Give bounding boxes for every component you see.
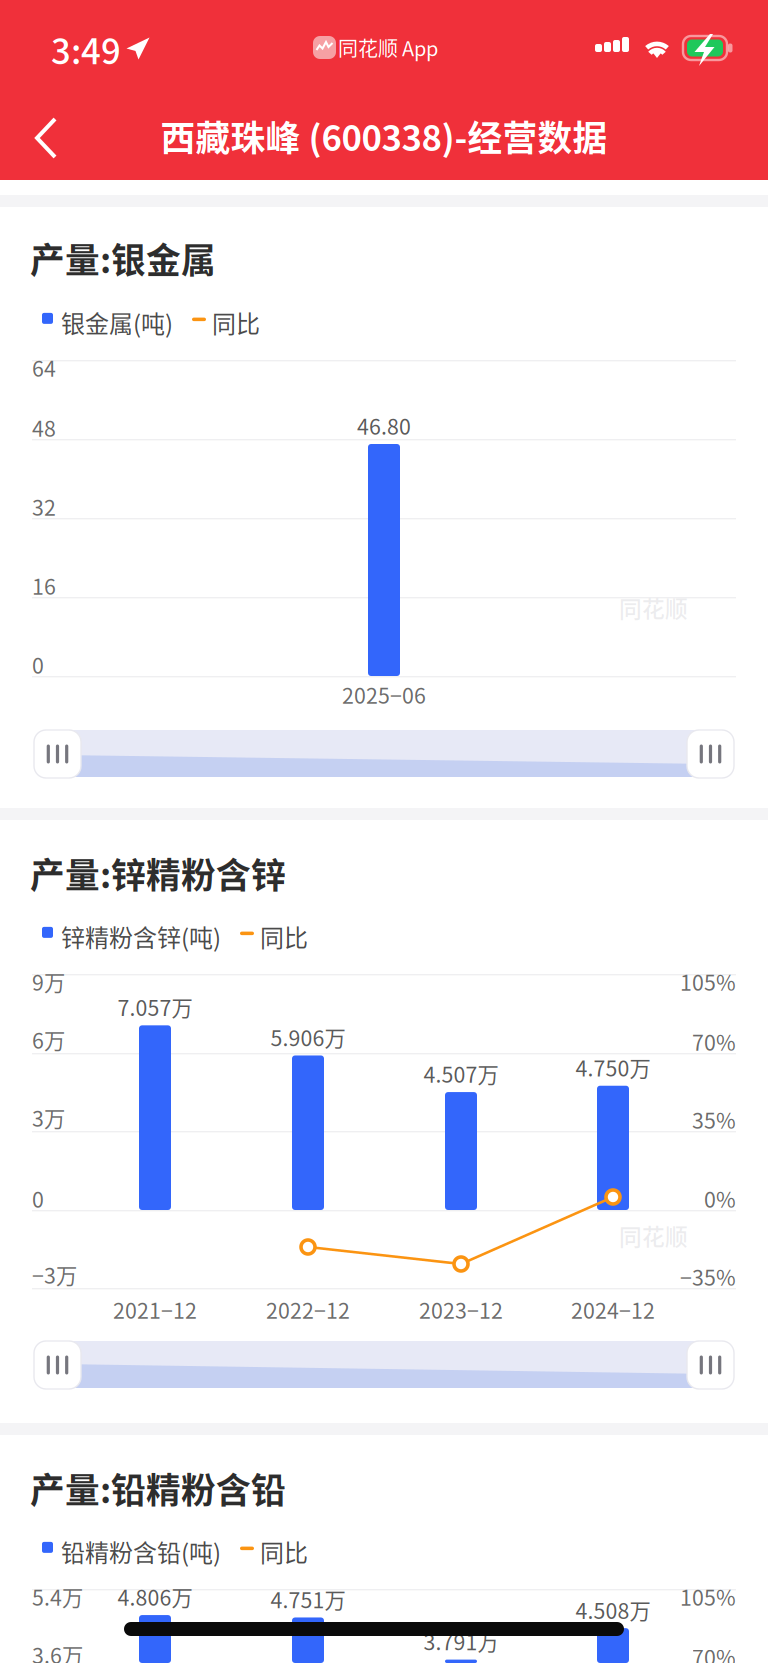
staticText: 3万: [32, 1102, 65, 1133]
staticText: 4.806万: [117, 1581, 192, 1612]
staticText: 7.057万: [117, 991, 192, 1022]
staticText: 46.80: [357, 410, 411, 441]
staticText: 4.507万: [423, 1058, 498, 1089]
staticText: 32: [32, 491, 56, 522]
staticText: 5.4万: [32, 1581, 83, 1612]
staticText: 5.906万: [270, 1021, 345, 1052]
staticText: 同比: [212, 305, 260, 340]
staticText: 同花顺 App: [338, 33, 438, 62]
staticText: 产量:银金属: [30, 233, 216, 283]
staticText: 105%: [680, 966, 736, 997]
staticText: −35%: [680, 1261, 736, 1292]
staticText: 3:49: [51, 24, 121, 74]
staticText: 3.791万: [423, 1626, 498, 1656]
staticText: 2023−12: [419, 1294, 503, 1325]
staticText: 同比: [260, 919, 308, 954]
staticText: 2024−12: [571, 1294, 655, 1325]
staticText: 0%: [704, 1183, 736, 1214]
staticText: 35%: [692, 1104, 736, 1135]
staticText: −3万: [32, 1259, 77, 1290]
staticText: 48: [32, 412, 56, 443]
staticText: 0: [32, 649, 44, 680]
staticText: 105%: [680, 1581, 736, 1612]
staticText: 70%: [692, 1641, 736, 1663]
staticText: 4.751万: [270, 1583, 345, 1614]
staticText: 9万: [32, 966, 65, 997]
staticText: 同花顺: [619, 1219, 688, 1252]
staticText: 16: [32, 570, 56, 601]
staticText: 银金属(吨): [61, 305, 173, 340]
staticText: 70%: [692, 1026, 736, 1057]
staticText: 64: [32, 352, 56, 383]
staticText: 4.508万: [575, 1594, 650, 1625]
button[interactable]: Adjust range: [34, 730, 81, 778]
staticText: 3.6万: [32, 1639, 83, 1663]
staticText: 铅精粉含铅(吨): [61, 1534, 221, 1569]
button[interactable]: Adjust range: [687, 730, 734, 778]
button[interactable]: Back: [11, 95, 83, 175]
staticText: 西藏珠峰 (600338)-经营数据: [160, 111, 607, 161]
staticText: 锌精粉含锌(吨): [61, 919, 221, 954]
staticText: 同比: [260, 1534, 308, 1569]
staticText: 产量:锌精粉含锌: [30, 848, 286, 898]
staticText: 2022−12: [266, 1294, 350, 1325]
staticText: 4.750万: [575, 1052, 650, 1083]
button[interactable]: Adjust range: [687, 1341, 734, 1389]
staticText: 2021−12: [113, 1294, 197, 1325]
staticText: 2025−06: [342, 679, 426, 710]
staticText: 0: [32, 1183, 44, 1214]
staticText: 同花顺: [619, 591, 688, 624]
button[interactable]: Adjust range: [34, 1341, 81, 1389]
staticText: 产量:铅精粉含铅: [30, 1463, 286, 1513]
staticText: 6万: [32, 1024, 65, 1055]
